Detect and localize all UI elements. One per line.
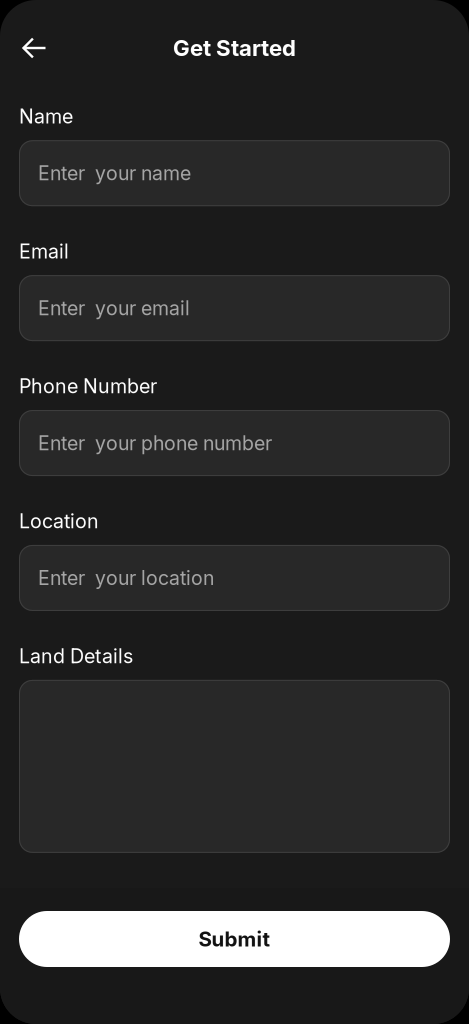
button[interactable]: Location	[19, 545, 450, 611]
staticText: Phone Number	[19, 374, 157, 398]
button[interactable]: Phone Number	[19, 410, 450, 476]
button[interactable]: Back	[12, 26, 56, 70]
staticText: Submit	[198, 927, 270, 951]
button[interactable]: Email	[19, 275, 450, 341]
staticText: Get Started	[173, 34, 296, 61]
staticText: Enter your name	[38, 161, 191, 185]
staticText: Enter your location	[38, 566, 214, 590]
staticText: Email	[19, 239, 69, 263]
button[interactable]: Name	[19, 140, 450, 206]
staticText: Land Details	[19, 644, 133, 668]
staticText: Name	[19, 104, 73, 128]
button[interactable]: Submit	[19, 911, 450, 967]
staticText: Location	[19, 509, 99, 533]
staticText: Enter your email	[38, 296, 190, 320]
staticText: Enter your phone number	[38, 431, 272, 455]
